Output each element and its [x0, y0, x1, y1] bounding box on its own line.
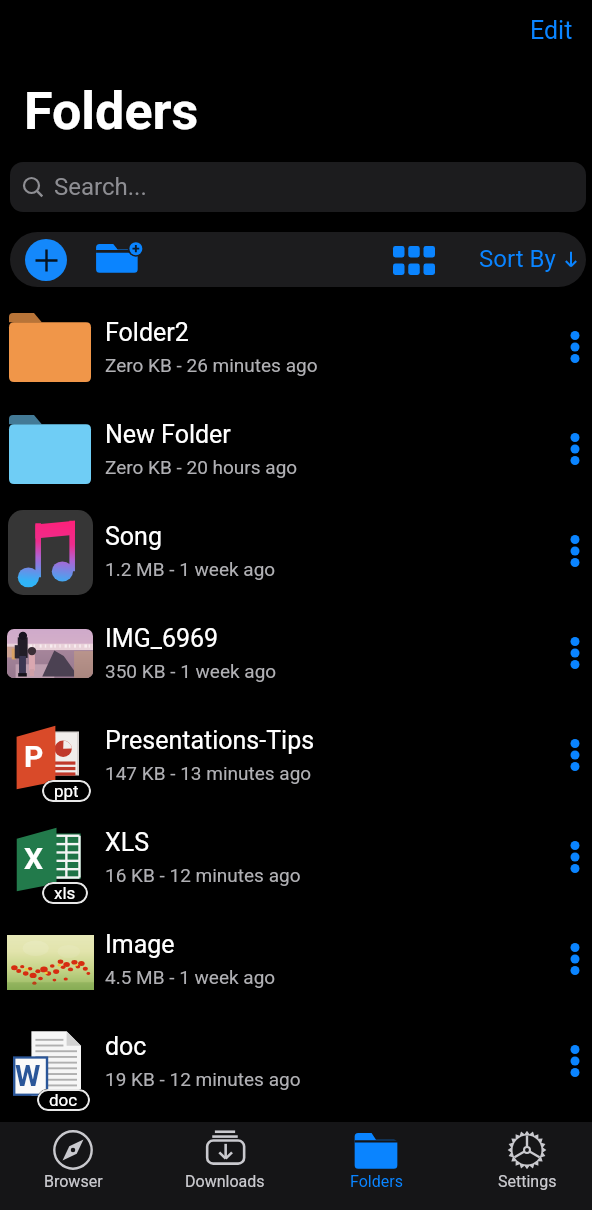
button[interactable]: Edit	[518, 7, 584, 53]
staticText: doc	[105, 1032, 147, 1061]
button[interactable]: More options	[552, 500, 592, 602]
staticText: Zero KB - 26 minutes ago	[105, 354, 318, 376]
button[interactable]: New Folder	[0, 398, 592, 500]
button[interactable]: More options	[552, 602, 592, 704]
staticText: Folders	[24, 81, 199, 142]
staticText: Downloads	[185, 1172, 265, 1191]
staticText: Presentations-Tips	[105, 726, 315, 755]
button[interactable]: Image	[0, 908, 592, 1010]
button[interactable]: IMG_6969	[0, 602, 592, 704]
button[interactable]: Search...	[10, 162, 586, 212]
button[interactable]: More options	[552, 296, 592, 398]
button[interactable]: More options	[552, 806, 592, 908]
staticText: 4.5 MB - 1 week ago	[105, 966, 276, 988]
staticText: Browser	[44, 1172, 103, 1191]
staticText: 19 KB - 12 minutes ago	[105, 1068, 301, 1090]
button[interactable]: Sort By	[469, 238, 586, 280]
staticText: ppt	[54, 781, 79, 801]
staticText: 147 KB - 13 minutes ago	[105, 762, 312, 784]
staticText: 350 KB - 1 week ago	[105, 660, 277, 682]
button[interactable]: X	[0, 806, 592, 908]
staticText: W	[15, 1059, 41, 1093]
staticText: Song	[105, 522, 162, 551]
staticText: doc	[49, 1090, 78, 1110]
staticText: 16 KB - 12 minutes ago	[105, 864, 301, 886]
staticText: xls	[54, 883, 76, 903]
button[interactable]: Folder2	[0, 296, 592, 398]
button[interactable]: Downloads	[165, 1122, 285, 1210]
button[interactable]: Song	[0, 500, 592, 602]
button[interactable]: More options	[552, 1010, 592, 1112]
button[interactable]: Settings	[467, 1122, 587, 1210]
staticText: P	[24, 739, 44, 774]
button[interactable]: Folders	[316, 1122, 436, 1210]
staticText: IMG_6969	[105, 624, 219, 653]
button[interactable]: More options	[552, 398, 592, 500]
staticText: Search...	[54, 173, 147, 201]
staticText: Zero KB - 20 hours ago	[105, 456, 298, 478]
button[interactable]: W	[0, 1010, 592, 1112]
button[interactable]: Add	[25, 239, 67, 281]
button[interactable]: More options	[552, 908, 592, 1010]
staticText: XLS	[105, 828, 149, 857]
staticText: New Folder	[105, 420, 231, 449]
button[interactable]: P	[0, 704, 592, 806]
button[interactable]: New folder	[94, 236, 152, 282]
staticText: Folder2	[105, 318, 189, 347]
button[interactable]: Browser	[13, 1122, 133, 1210]
staticText: Settings	[498, 1172, 557, 1191]
staticText: Sort By	[479, 245, 556, 273]
button[interactable]: More options	[552, 704, 592, 806]
staticText: Image	[105, 930, 175, 959]
staticText: Edit	[530, 16, 573, 45]
staticText: Folders	[350, 1172, 403, 1191]
staticText: 1.2 MB - 1 week ago	[105, 558, 276, 580]
button[interactable]: Grid view	[383, 241, 445, 279]
staticText: X	[24, 841, 44, 876]
